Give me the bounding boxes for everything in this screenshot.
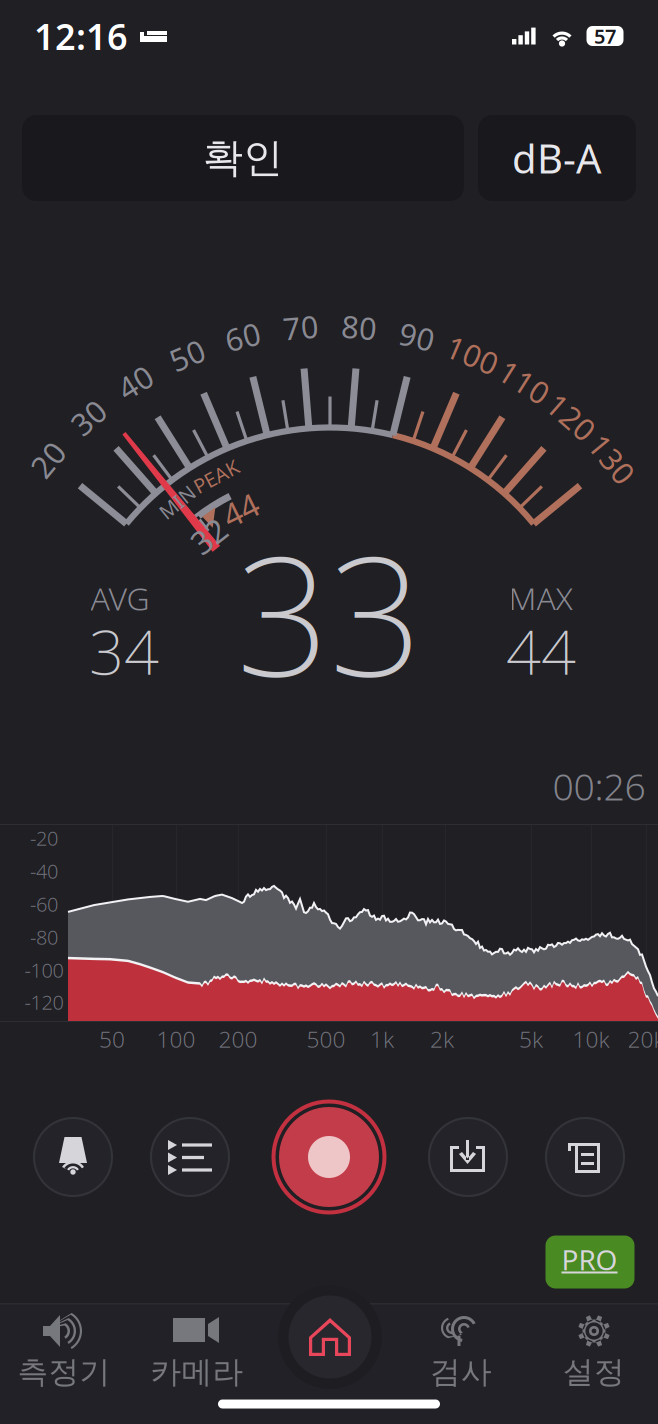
staticText: 100 <box>156 1024 195 1054</box>
staticText: 50 <box>169 335 205 375</box>
button[interactable]: 측정기 <box>0 1305 130 1405</box>
staticText: 20k <box>627 1024 658 1054</box>
staticText: 130 <box>585 439 639 480</box>
staticText: -120 <box>24 989 63 1015</box>
staticText: 33 <box>236 503 422 721</box>
staticText: 20 <box>30 439 66 480</box>
button[interactable]: PRO <box>545 1235 634 1288</box>
staticText: -100 <box>24 957 63 983</box>
staticText: 34 <box>89 610 159 692</box>
button[interactable]: 홈 <box>275 1282 385 1392</box>
button[interactable]: Report <box>545 1117 625 1197</box>
staticText: 60 <box>225 316 261 357</box>
staticText: 2k <box>430 1024 454 1054</box>
staticText: 1k <box>370 1024 394 1054</box>
button[interactable]: dB-A <box>478 115 636 201</box>
staticText: MAX <box>508 577 573 619</box>
staticText: 90 <box>399 316 435 357</box>
button[interactable]: 확인 <box>22 115 464 201</box>
staticText: -20 <box>30 825 58 851</box>
staticText: 00:26 <box>552 761 645 811</box>
staticText: -40 <box>30 858 58 884</box>
staticText: 70 <box>283 307 319 347</box>
button[interactable]: Measurements <box>150 1117 230 1197</box>
staticText: 5k <box>519 1024 543 1054</box>
button[interactable]: 검사 <box>395 1305 527 1405</box>
button[interactable]: Calibrate <box>33 1117 113 1197</box>
staticText: 200 <box>218 1024 257 1054</box>
staticText: dB-A <box>512 131 602 184</box>
staticText: 44 <box>222 489 258 531</box>
staticText: -80 <box>30 924 58 950</box>
staticText: PRO <box>561 1241 617 1278</box>
button[interactable]: Save <box>428 1117 508 1197</box>
staticText: 50 <box>99 1024 125 1054</box>
staticText: 카메라 <box>150 1353 243 1391</box>
staticText: 측정기 <box>17 1353 110 1391</box>
staticText: AVG <box>90 577 149 619</box>
staticText: 설정 <box>563 1353 625 1391</box>
staticText: 44 <box>506 610 576 692</box>
staticText: 10k <box>572 1024 609 1054</box>
staticText: 검사 <box>430 1353 492 1391</box>
button[interactable]: 카메라 <box>131 1305 263 1405</box>
staticText: 12:16 <box>34 12 128 60</box>
staticText: 40 <box>117 362 153 402</box>
staticText: 확인 <box>203 133 283 182</box>
staticText: -60 <box>30 891 58 917</box>
staticText: 32 <box>190 515 226 557</box>
button[interactable]: Record <box>269 1097 389 1217</box>
button[interactable]: 설정 <box>528 1305 658 1405</box>
staticText: 120 <box>544 397 598 437</box>
staticText: 110 <box>497 362 551 402</box>
staticText: 30 <box>71 397 107 437</box>
staticText: 80 <box>341 307 377 347</box>
staticText: 500 <box>306 1024 345 1054</box>
staticText: 100 <box>446 335 500 375</box>
staticText: PEAK <box>192 463 240 490</box>
staticText: MIN <box>157 489 197 515</box>
staticText: 57 <box>594 23 616 49</box>
